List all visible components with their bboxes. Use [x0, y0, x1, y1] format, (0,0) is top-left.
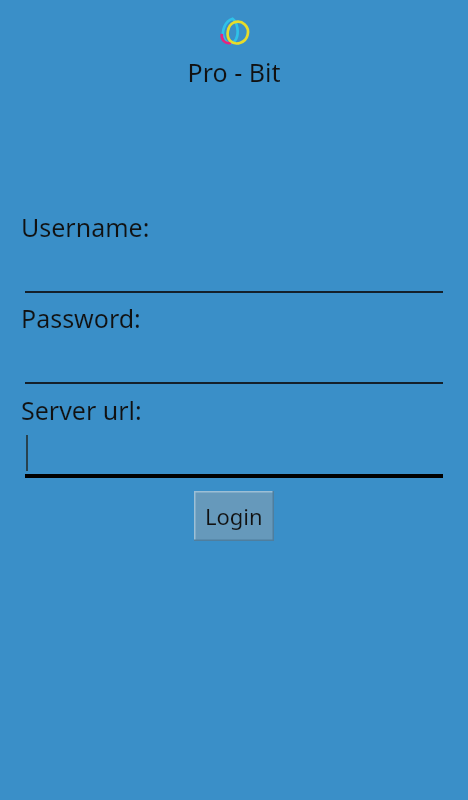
staticText: Server url:	[21, 393, 142, 427]
staticText: Login	[205, 501, 263, 531]
staticText: Password:	[21, 301, 141, 335]
staticText: Pro - Bit	[0, 55, 468, 89]
button[interactable]: Login	[194, 491, 274, 541]
staticText: Username:	[21, 210, 150, 244]
